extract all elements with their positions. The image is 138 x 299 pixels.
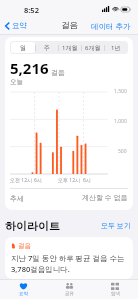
- staticText: 500: [118, 148, 127, 155]
- staticText: 주: [44, 44, 50, 52]
- staticText: 하이라이트: [5, 219, 60, 233]
- staticText: 걸음: [18, 242, 31, 250]
- staticText: 오후 12시: [58, 177, 81, 184]
- staticText: 걸음: [51, 68, 65, 77]
- staticText: 8:52: [24, 5, 39, 15]
- button[interactable]: 일: [11, 42, 35, 53]
- staticText: 계산할 수 없음: [82, 193, 128, 203]
- staticText: 모두 보기: [101, 221, 131, 231]
- button[interactable]: 1년: [104, 42, 127, 53]
- staticText: 데이터 추가: [91, 21, 131, 31]
- staticText: 공유: [65, 291, 74, 297]
- staticText: 오늘: [10, 78, 23, 86]
- staticText: 1,500: [114, 88, 127, 95]
- staticText: 일: [20, 44, 26, 52]
- staticText: 오전 12시: [10, 177, 33, 184]
- staticText: 6시: [34, 177, 42, 184]
- staticText: 1,000: [114, 118, 127, 125]
- staticText: 6시: [83, 177, 91, 184]
- button[interactable]: 공유: [46, 280, 92, 299]
- button[interactable]: 요약: [0, 280, 46, 299]
- button[interactable]: 6개월: [81, 42, 104, 53]
- staticText: 요약: [12, 21, 27, 30]
- button[interactable]: 요약: [4, 19, 28, 32]
- staticText: 탐색: [111, 291, 120, 297]
- staticText: 걸음: [61, 20, 78, 31]
- button[interactable]: 추세: [10, 193, 128, 203]
- staticText: 5,216: [10, 58, 49, 78]
- button[interactable]: 모두 보기: [99, 219, 133, 233]
- button[interactable]: 탐색: [92, 280, 138, 299]
- staticText: 1년: [111, 44, 121, 52]
- button[interactable]: 주: [35, 42, 58, 53]
- staticText: 6개월: [85, 44, 101, 52]
- button[interactable]: 걸음: [5, 237, 133, 279]
- button[interactable]: 1개월: [58, 42, 81, 53]
- staticText: 1개월: [62, 44, 78, 52]
- staticText: 요약: [19, 291, 28, 297]
- button[interactable]: 데이터 추가: [89, 19, 133, 33]
- staticText: 추세: [10, 194, 24, 203]
- staticText: 지난 7일 동안 하루 평균 걸음 수는 3,780걸음입니다.: [11, 253, 125, 274]
